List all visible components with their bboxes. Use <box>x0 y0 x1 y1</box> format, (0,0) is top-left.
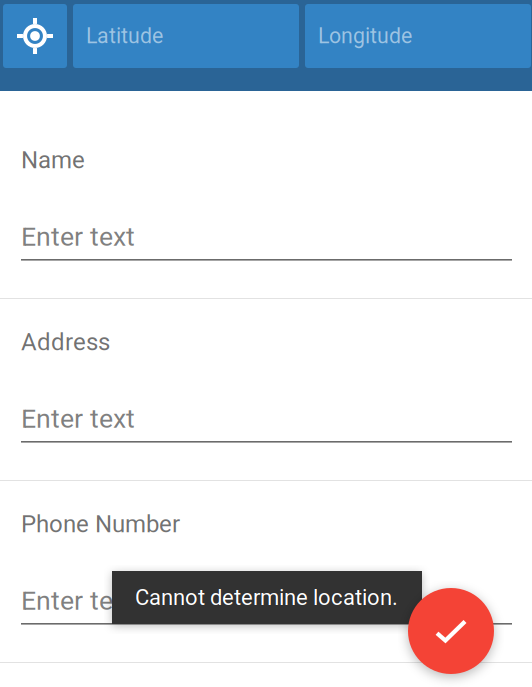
staticText: Enter text <box>21 585 135 616</box>
staticText: Enter text <box>21 221 135 252</box>
staticText: Longitude <box>318 23 412 48</box>
button[interactable]: Save <box>408 588 494 674</box>
staticText: Phone Number <box>21 510 180 538</box>
button[interactable]: Longitude <box>305 4 531 68</box>
staticText: Latitude <box>86 23 163 48</box>
staticText: Address <box>21 328 110 356</box>
staticText: Enter text <box>21 403 135 434</box>
button[interactable]: Latitude <box>73 4 299 68</box>
button[interactable]: Use current location <box>3 4 67 68</box>
staticText: Cannot determine location. <box>135 585 398 610</box>
staticText: Name <box>21 146 85 174</box>
